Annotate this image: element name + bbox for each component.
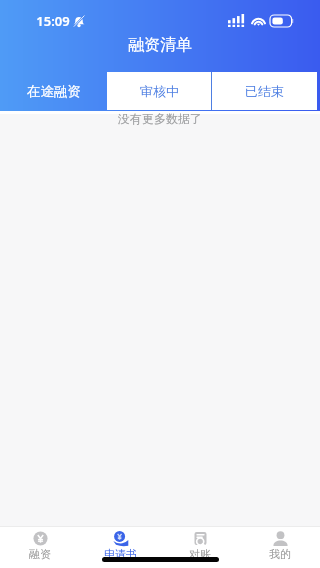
button[interactable]: 我的 <box>240 526 320 568</box>
staticText: 没有更多数据了 <box>118 111 202 126</box>
staticText: 已结束 <box>245 83 284 99</box>
staticText: 审核中 <box>140 83 179 99</box>
staticText: 融资 <box>29 547 51 561</box>
button[interactable]: 融资 <box>0 526 80 568</box>
button[interactable]: 审核中 <box>107 72 211 110</box>
button[interactable]: 申请书 <box>80 526 160 568</box>
staticText: 在途融资 <box>27 83 81 100</box>
button[interactable]: 已结束 <box>212 72 317 110</box>
staticText: 15:09 <box>36 12 70 30</box>
staticText: 对账 <box>189 547 211 561</box>
staticText: 申请书 <box>104 547 137 561</box>
staticText: 融资清单 <box>128 35 192 55</box>
button[interactable]: 对账 <box>160 526 240 568</box>
button[interactable]: 在途融资 <box>0 72 107 110</box>
staticText: 我的 <box>269 547 291 561</box>
